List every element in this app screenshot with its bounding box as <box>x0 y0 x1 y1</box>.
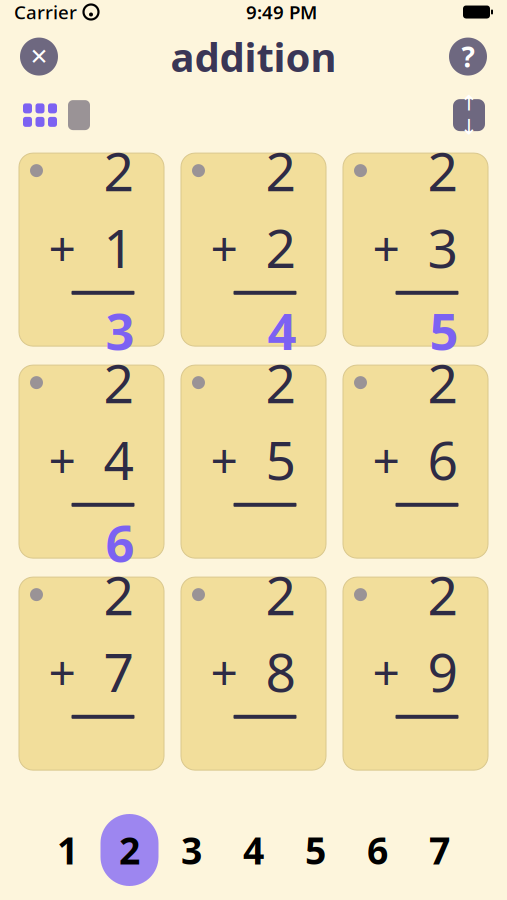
staticText <box>445 509 458 576</box>
staticText: 3 <box>181 825 202 875</box>
staticText: ↑↓ <box>460 91 478 139</box>
button[interactable]: Grid view <box>22 100 58 130</box>
staticText: 4 <box>103 424 134 495</box>
button[interactable]: 2 plus 6 <box>343 365 488 558</box>
staticText <box>121 721 134 788</box>
staticText: + <box>372 639 399 703</box>
staticText: 2 <box>265 559 296 630</box>
staticText: + <box>48 427 75 491</box>
button[interactable]: 4 <box>222 812 284 888</box>
staticText: 3 <box>105 297 134 364</box>
button[interactable]: 6 <box>346 812 408 888</box>
staticText: 2 <box>427 347 458 418</box>
staticText: + <box>210 427 237 491</box>
button[interactable]: 2 plus 9 <box>343 577 488 770</box>
button[interactable]: 3 <box>160 812 222 888</box>
staticText: 6 <box>427 424 458 495</box>
staticText: 8 <box>265 636 296 707</box>
staticText: ✕ <box>29 44 48 69</box>
button[interactable]: Help <box>449 38 487 76</box>
staticText: 9 <box>427 636 458 707</box>
staticText: Carrier <box>14 0 77 24</box>
staticText: 7 <box>103 636 134 707</box>
staticText: 2 <box>119 825 140 875</box>
button[interactable]: 2 plus 7 <box>19 577 164 770</box>
button[interactable]: Close <box>20 38 58 76</box>
staticText: addition <box>170 30 336 83</box>
staticText: 7 <box>429 825 450 875</box>
staticText: + <box>48 639 75 703</box>
button[interactable]: 2 plus 5 <box>181 365 326 558</box>
staticText: 4 <box>267 297 296 364</box>
staticText: 2 <box>265 347 296 418</box>
button[interactable]: 7 <box>408 812 470 888</box>
staticText: 2 <box>265 212 296 283</box>
button[interactable]: 2 plus 8 <box>181 577 326 770</box>
staticText: 4 <box>243 825 264 875</box>
staticText: 9:49 PM <box>246 0 317 24</box>
staticText: 2 <box>103 347 134 418</box>
button[interactable]: 5 <box>284 812 346 888</box>
staticText: 2 <box>103 559 134 630</box>
staticText: 2 <box>265 135 296 206</box>
staticText: 3 <box>427 212 458 283</box>
button[interactable]: 2 plus 3 <box>343 153 488 346</box>
staticText: 2 <box>103 135 134 206</box>
staticText: 1 <box>103 212 134 283</box>
staticText: 5 <box>305 825 326 875</box>
staticText <box>283 509 296 576</box>
staticText: 2 <box>427 135 458 206</box>
button[interactable]: 2 <box>98 812 160 888</box>
button[interactable]: 1 <box>36 812 98 888</box>
staticText: 1 <box>57 825 78 875</box>
staticText <box>445 721 458 788</box>
staticText: + <box>372 427 399 491</box>
staticText: 2 <box>427 559 458 630</box>
staticText: 5 <box>265 424 296 495</box>
staticText: + <box>210 215 237 279</box>
button[interactable]: 2 plus 1 <box>19 153 164 346</box>
staticText: + <box>210 639 237 703</box>
button[interactable]: Single card view <box>64 100 94 130</box>
staticText <box>283 721 296 788</box>
button[interactable]: 2 plus 2 <box>181 153 326 346</box>
staticText: + <box>48 215 75 279</box>
staticText: ? <box>461 38 474 75</box>
staticText: + <box>372 215 399 279</box>
staticText: 6 <box>105 509 134 576</box>
button[interactable]: 2 plus 4 <box>19 365 164 558</box>
staticText: 5 <box>429 297 458 364</box>
staticText: 6 <box>367 825 388 875</box>
button[interactable]: Sort <box>453 99 485 131</box>
